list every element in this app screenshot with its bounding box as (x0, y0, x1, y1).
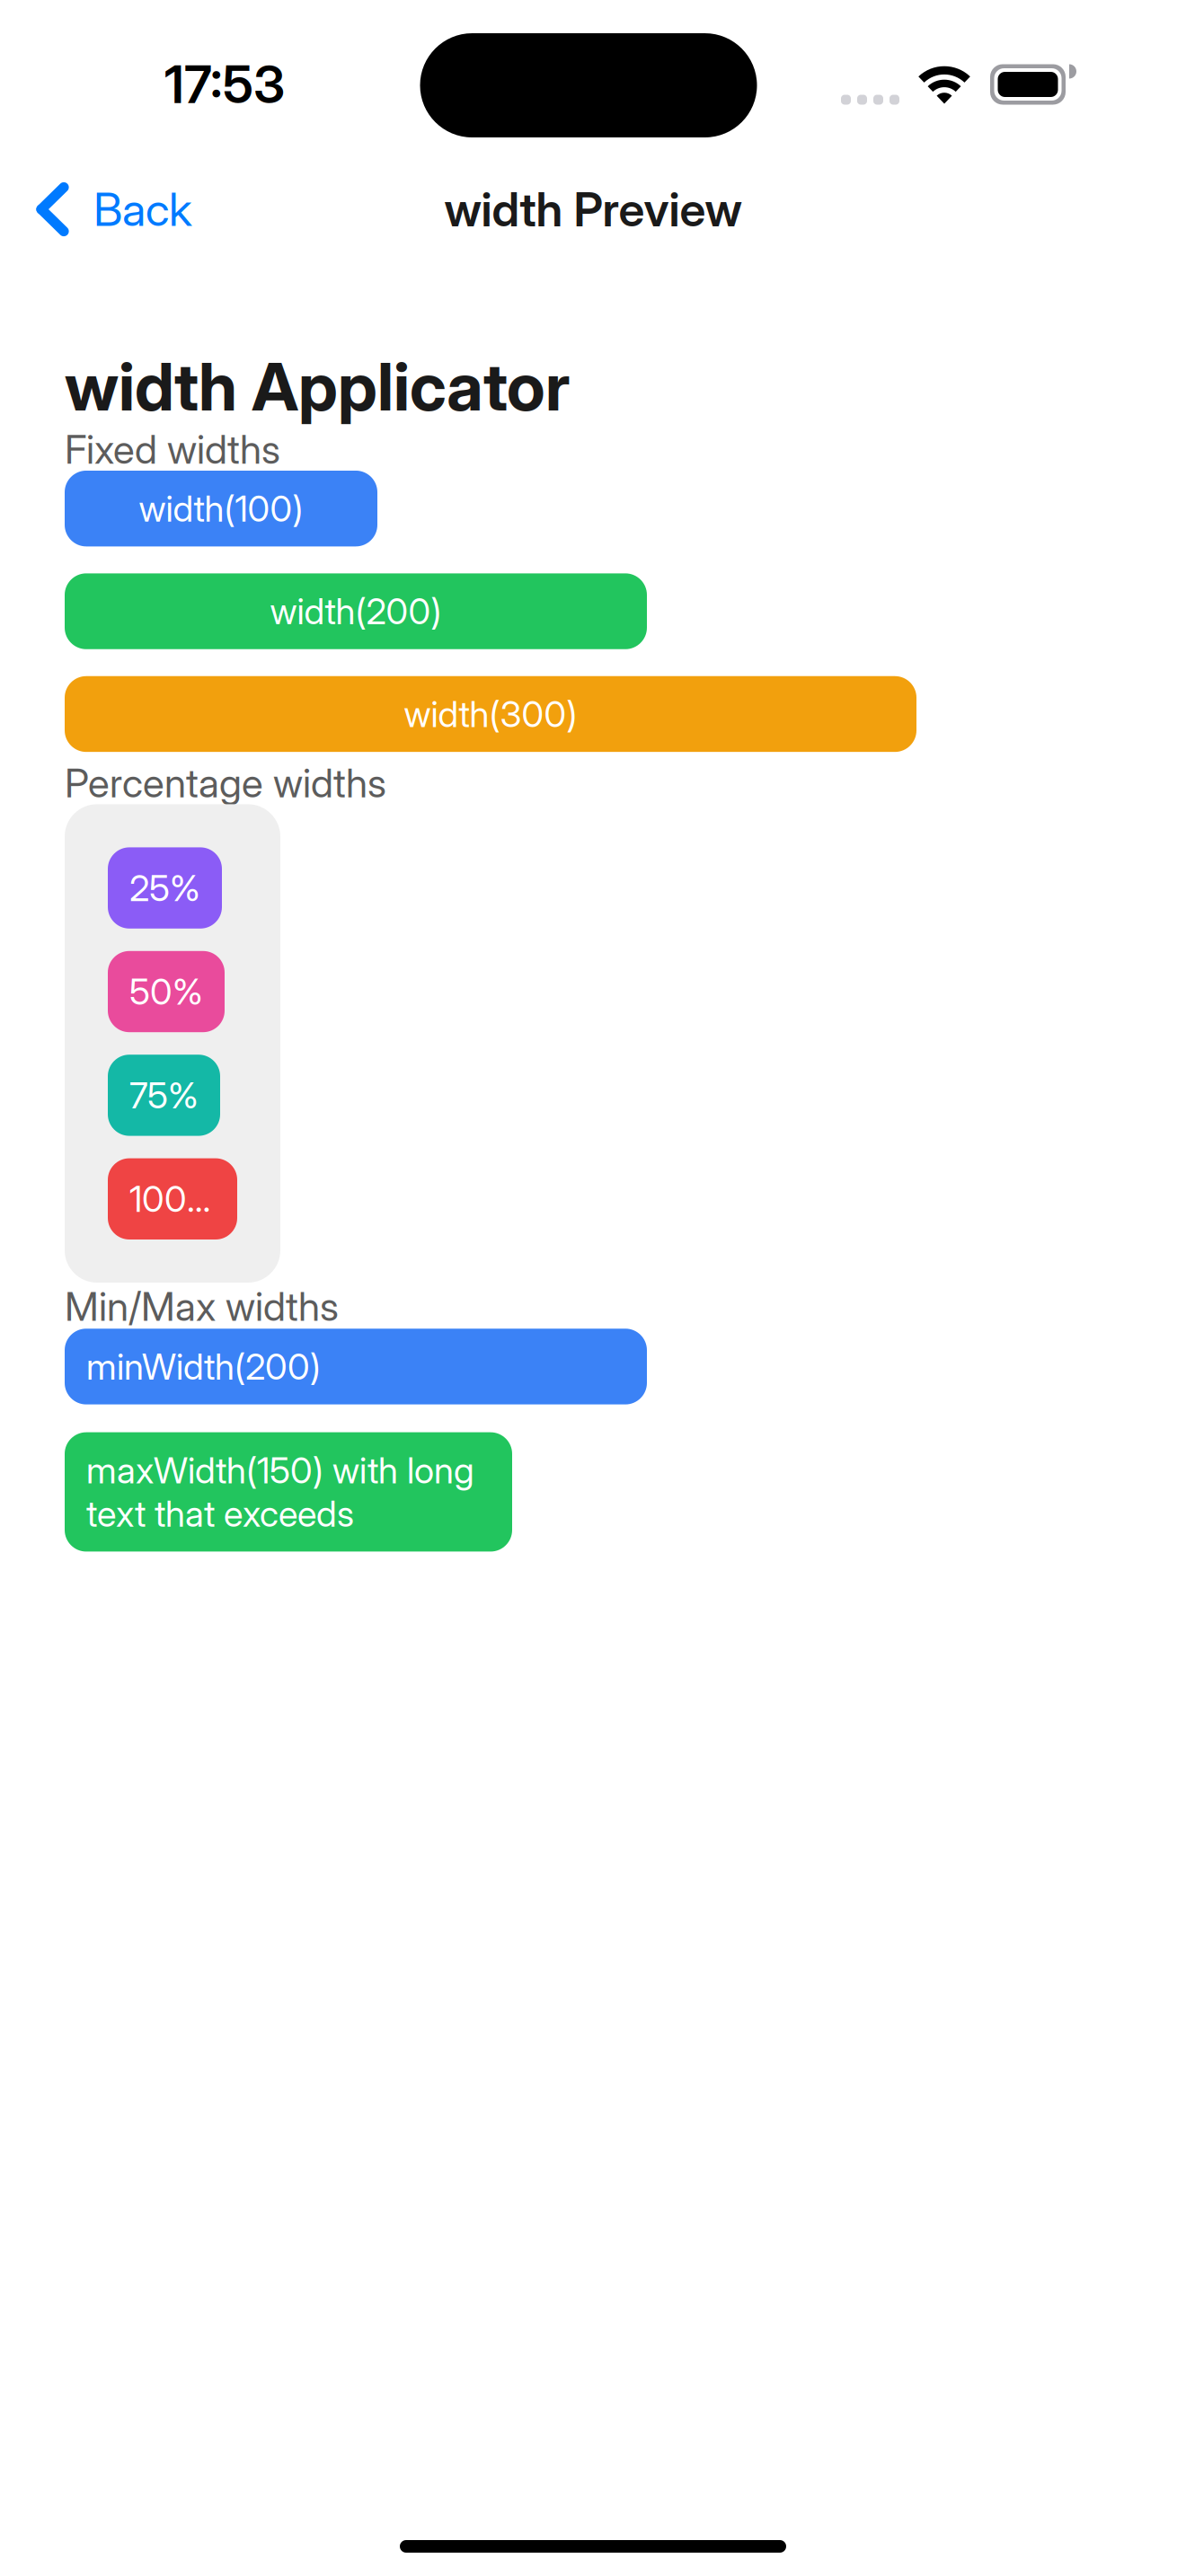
staticText: Fixed widths (65, 425, 280, 473)
staticText: Percentage widths (65, 759, 386, 807)
staticText: width Preview (444, 181, 742, 237)
staticText: 75% (129, 1074, 199, 1117)
staticText: width(300) (404, 692, 577, 736)
staticText: maxWidth(150) with long text that exceed… (86, 1448, 474, 1535)
staticText: Back (93, 182, 192, 237)
staticText: minWidth(200) (86, 1345, 321, 1388)
staticText: 17:53 (164, 53, 285, 116)
staticText: Min/Max widths (65, 1283, 339, 1330)
staticText: 25% (129, 866, 200, 910)
staticText: width(100) (139, 487, 303, 530)
staticText: 50% (129, 970, 203, 1013)
staticText: 100% (129, 1177, 216, 1221)
staticText: width(200) (270, 590, 442, 633)
staticText: width Applicator (65, 347, 570, 426)
button[interactable]: Back (0, 163, 210, 256)
